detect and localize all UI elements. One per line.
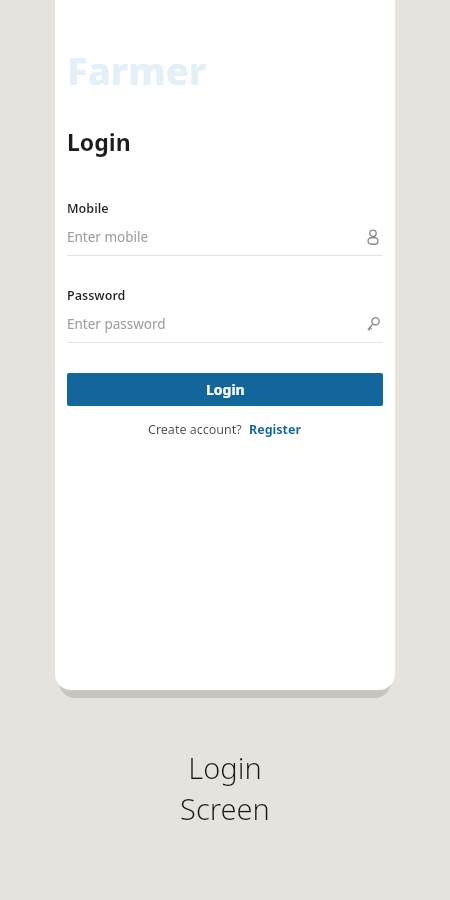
staticText: Farmer — [67, 44, 207, 96]
button[interactable]: Enter mobile — [67, 227, 383, 247]
other: Password — [363, 314, 383, 334]
staticText: Screen — [180, 789, 270, 828]
staticText: Enter mobile — [67, 228, 363, 246]
button[interactable]: Enter password — [67, 314, 383, 334]
staticText: Password — [67, 287, 126, 304]
staticText: Register — [249, 421, 302, 438]
staticText: Enter password — [67, 315, 363, 333]
staticText: Login — [188, 748, 262, 787]
staticText: Login — [67, 126, 131, 157]
button[interactable]: Register — [248, 419, 303, 440]
staticText: Mobile — [67, 200, 109, 217]
other: Mobile number — [363, 227, 383, 247]
staticText: Create account? — [148, 421, 242, 438]
staticText: Login — [206, 380, 245, 399]
button[interactable]: Login — [67, 373, 383, 406]
